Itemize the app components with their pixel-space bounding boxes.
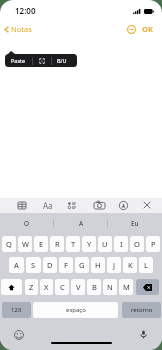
button[interactable]: H xyxy=(91,257,105,273)
button[interactable]: A xyxy=(9,257,24,273)
staticText: L xyxy=(144,260,148,270)
button[interactable]: espaço xyxy=(33,302,118,318)
button[interactable]: J xyxy=(107,257,121,273)
staticText: U xyxy=(102,239,108,249)
staticText: J xyxy=(113,260,116,270)
button[interactable]: Format text xyxy=(41,198,55,212)
staticText: F xyxy=(64,260,68,270)
button[interactable]: Z xyxy=(25,279,38,295)
staticText: M xyxy=(123,282,130,292)
button[interactable]: Backspace xyxy=(136,279,159,295)
button[interactable]: retorno xyxy=(122,302,161,318)
button[interactable]: P xyxy=(146,236,160,252)
staticText: 12:00 xyxy=(15,5,36,16)
staticText: retorno xyxy=(131,306,153,314)
staticText: I xyxy=(120,239,123,249)
staticText: N xyxy=(107,282,113,292)
button[interactable]: Cut xyxy=(33,54,51,67)
button[interactable]: M xyxy=(119,279,133,295)
button[interactable]: Close xyxy=(140,198,154,212)
button[interactable]: I xyxy=(114,236,128,252)
staticText: B xyxy=(92,282,97,292)
button[interactable]: Paste xyxy=(5,54,32,67)
button[interactable]: 123 xyxy=(2,302,31,318)
button[interactable]: Q xyxy=(2,236,16,252)
staticText: Q xyxy=(6,239,12,249)
button[interactable]: Y xyxy=(82,236,96,252)
staticText: OK xyxy=(142,24,153,34)
button[interactable]: Eu xyxy=(108,213,162,233)
button[interactable]: D xyxy=(43,257,57,273)
button[interactable]: T xyxy=(66,236,80,252)
staticText: espaço xyxy=(66,306,86,314)
button[interactable]: C xyxy=(55,279,69,295)
staticText: A xyxy=(79,219,84,228)
button[interactable]: L xyxy=(139,257,153,273)
staticText: Notas xyxy=(11,24,32,34)
staticText: V xyxy=(76,282,81,292)
button[interactable]: Emoji xyxy=(12,328,25,341)
button[interactable]: N xyxy=(103,279,117,295)
button[interactable]: Table xyxy=(15,198,29,212)
button[interactable]: B xyxy=(87,279,101,295)
staticText: B/U xyxy=(57,57,67,64)
staticText: T xyxy=(71,239,76,249)
button[interactable]: F xyxy=(59,257,73,273)
staticText: C xyxy=(60,282,65,292)
staticText: W xyxy=(22,239,29,249)
staticText: Z xyxy=(29,282,34,292)
staticText: 123 xyxy=(11,306,22,314)
staticText: Y xyxy=(87,239,92,249)
staticText: S xyxy=(31,260,36,270)
staticText: H xyxy=(95,260,101,270)
button[interactable]: E xyxy=(34,236,48,252)
button[interactable]: Markup xyxy=(116,198,130,212)
staticText: Aa xyxy=(43,200,53,211)
button[interactable]: U xyxy=(98,236,112,252)
staticText: D xyxy=(47,260,53,270)
staticText: O xyxy=(134,239,140,249)
staticText: P xyxy=(151,239,156,249)
staticText: A xyxy=(14,260,19,270)
button[interactable]: O xyxy=(130,236,144,252)
staticText: X xyxy=(44,282,49,292)
button[interactable]: O xyxy=(0,213,54,233)
button[interactable]: Dictate xyxy=(137,328,150,341)
button[interactable]: X xyxy=(40,279,53,295)
button[interactable]: Notas xyxy=(1,21,34,37)
button[interactable]: Shift xyxy=(1,279,22,295)
staticText: K xyxy=(128,260,133,270)
button[interactable]: G xyxy=(75,257,89,273)
staticText: E xyxy=(39,239,44,249)
button[interactable]: R xyxy=(50,236,64,252)
button[interactable]: W xyxy=(18,236,32,252)
staticText: G xyxy=(79,260,85,270)
button[interactable]: Camera xyxy=(92,198,106,212)
staticText: Paste xyxy=(11,57,26,64)
button[interactable]: Checklist xyxy=(65,198,79,212)
button[interactable]: OK xyxy=(141,22,154,36)
staticText: O xyxy=(24,219,30,228)
button[interactable]: K xyxy=(123,257,137,273)
staticText: R xyxy=(55,239,60,249)
staticText: Eu xyxy=(131,219,139,228)
button[interactable]: V xyxy=(71,279,85,295)
button[interactable]: S xyxy=(26,257,41,273)
button[interactable]: B/U xyxy=(52,54,72,67)
button[interactable]: A xyxy=(54,213,108,233)
button[interactable]: Remove xyxy=(125,23,138,36)
